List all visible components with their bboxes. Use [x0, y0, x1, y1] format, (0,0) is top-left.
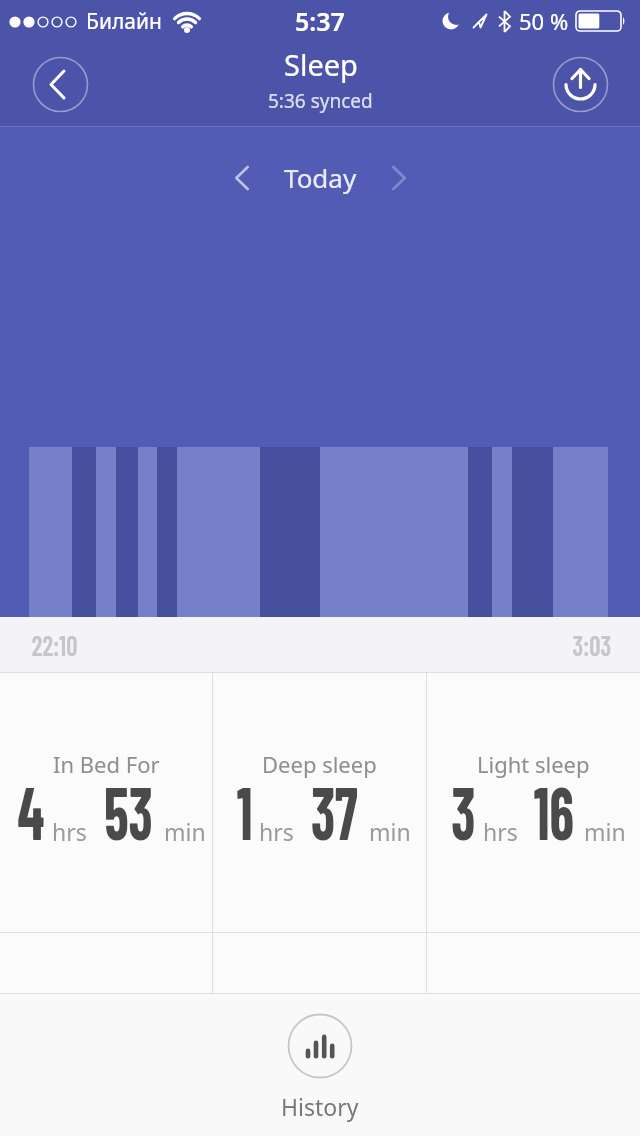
staticText: 3: [451, 766, 476, 855]
staticText: 22:10: [32, 628, 78, 662]
staticText: 37: [311, 766, 358, 855]
staticText: min: [164, 816, 206, 847]
button[interactable]: [33, 57, 88, 112]
staticText: hrs: [483, 816, 518, 847]
button[interactable]: [553, 57, 608, 112]
staticText: min: [584, 816, 626, 847]
staticText: 16: [534, 766, 574, 855]
staticText: 50 %: [519, 6, 569, 36]
button[interactable]: In Bed For: [0, 673, 212, 932]
button[interactable]: [386, 161, 412, 195]
staticText: 5:36 synced: [268, 88, 373, 114]
button[interactable]: Deep sleep: [213, 673, 426, 932]
staticText: In Bed For: [53, 749, 160, 779]
staticText: History: [281, 1091, 359, 1122]
staticText: Sleep: [284, 45, 358, 84]
staticText: 1: [237, 766, 253, 855]
staticText: 4: [17, 766, 44, 855]
staticText: Deep sleep: [262, 749, 377, 779]
staticText: 53: [104, 766, 153, 855]
staticText: 5:37: [295, 4, 345, 38]
staticText: Билайн: [86, 7, 162, 36]
staticText: Light sleep: [477, 749, 590, 779]
staticText: 3:03: [572, 628, 612, 662]
button[interactable]: [229, 161, 255, 195]
button[interactable]: History: [281, 1013, 359, 1122]
button[interactable]: Light sleep: [427, 673, 640, 932]
staticText: Today: [284, 160, 357, 195]
staticText: min: [369, 816, 411, 847]
staticText: hrs: [259, 816, 294, 847]
staticText: hrs: [52, 816, 87, 847]
